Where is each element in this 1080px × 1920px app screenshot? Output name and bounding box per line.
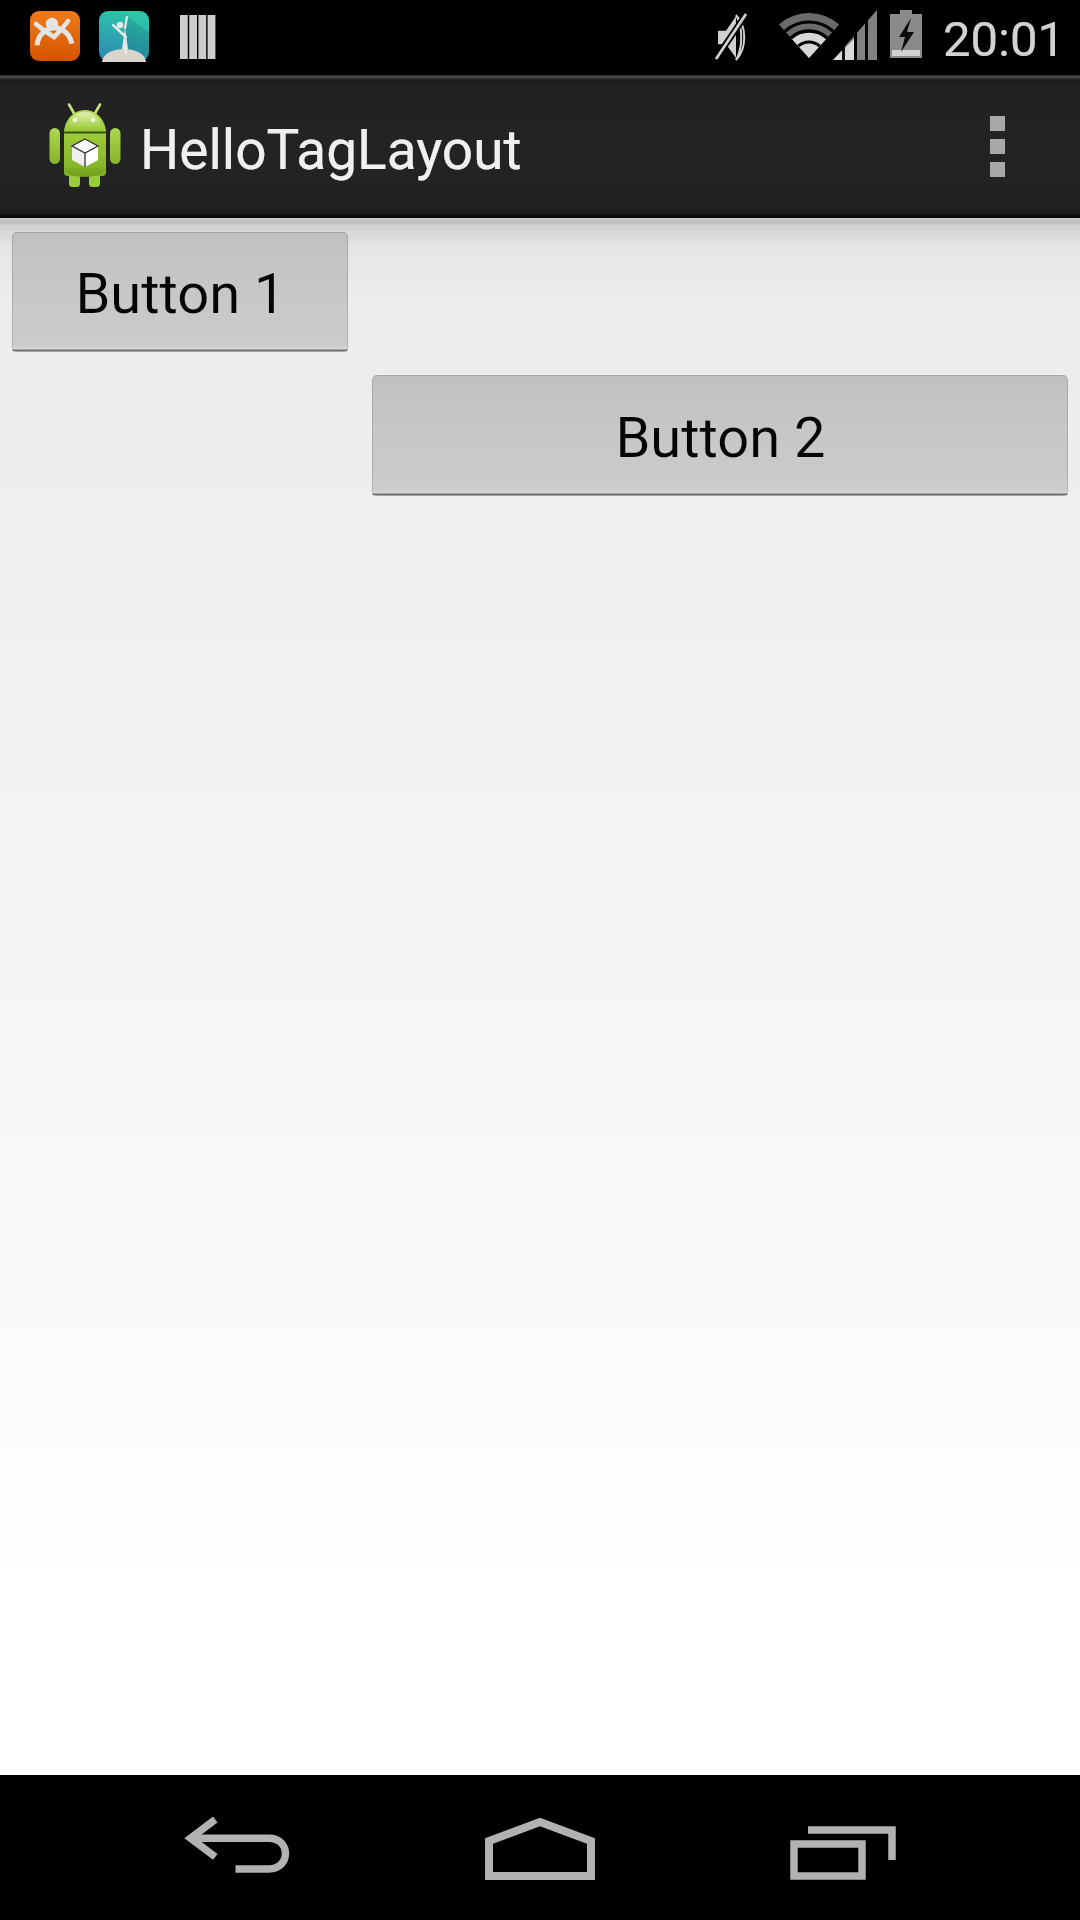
button[interactable]: Button 2 <box>372 375 1068 496</box>
button[interactable]: Back <box>148 1775 328 1920</box>
button[interactable]: Button 1 <box>12 232 348 352</box>
staticText: 20:01 <box>943 11 1066 68</box>
button[interactable]: HelloTagLayout <box>0 75 560 218</box>
staticText: Button 1 <box>75 261 286 327</box>
staticText: HelloTagLayout <box>140 118 522 182</box>
button[interactable]: More options <box>942 75 1052 218</box>
button[interactable]: Home <box>450 1775 630 1920</box>
button[interactable]: Recent apps <box>754 1775 934 1920</box>
staticText: Button 2 <box>615 405 826 471</box>
